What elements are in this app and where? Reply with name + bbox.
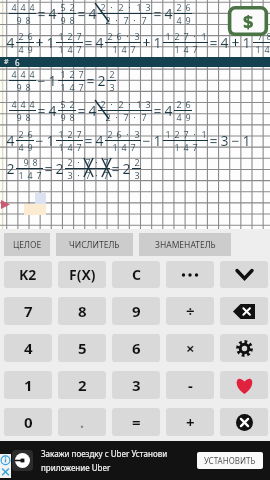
button[interactable]: ЧИСЛИТЕЛЬ — [56, 233, 133, 256]
button[interactable]: + — [166, 408, 214, 436]
button[interactable]: 7 — [4, 297, 52, 325]
staticText: 9 — [23, 156, 29, 168]
button[interactable]: ÷ — [166, 297, 214, 325]
button[interactable]: 4 — [4, 334, 52, 362]
staticText: 4 — [20, 1, 26, 13]
staticText: 2 — [67, 128, 73, 140]
staticText: 9 — [16, 14, 22, 26]
staticText: = — [77, 101, 86, 120]
staticText: ЗНАМЕНАТЕЛЬ — [155, 239, 216, 251]
button[interactable]: Remove ads — [228, 6, 268, 36]
staticText: 9 — [60, 111, 66, 123]
staticText: 3 — [220, 131, 229, 150]
staticText: 4 — [29, 1, 35, 13]
button[interactable]: ЦЕЛОЕ — [4, 233, 50, 256]
staticText: · — [95, 156, 98, 168]
staticText: 5 — [60, 1, 66, 13]
staticText: 8 — [25, 111, 31, 123]
staticText: 2 — [18, 30, 24, 42]
button[interactable]: 8 — [58, 297, 106, 325]
staticText: 4 — [48, 4, 57, 23]
staticText: 1 — [174, 43, 180, 55]
button[interactable]: C — [112, 261, 160, 288]
button[interactable]: 2 — [58, 371, 106, 399]
button[interactable]: × — [166, 334, 214, 362]
staticText: - — [188, 375, 193, 395]
staticText: 3 — [134, 169, 140, 181]
staticText: 4 — [183, 141, 189, 153]
staticText: 1 — [46, 131, 55, 150]
staticText: 1 — [58, 30, 64, 42]
button[interactable]: . — [58, 408, 106, 436]
staticText: УСТАНОВИТЬ — [204, 455, 256, 466]
other: Ad choices — [0, 454, 11, 478]
staticText: 2 — [107, 30, 113, 42]
staticText: 4 — [121, 141, 127, 153]
staticText: = — [209, 131, 218, 150]
button[interactable]: = — [112, 408, 160, 436]
staticText: 4 — [67, 141, 73, 153]
staticText: 4 — [183, 43, 189, 55]
staticText: 4 — [24, 338, 33, 358]
button[interactable]: 6 — [112, 334, 160, 362]
staticText: 7 — [24, 301, 33, 321]
staticText: − — [37, 71, 46, 90]
button[interactable]: 9 — [112, 297, 160, 325]
staticText: ЦЕЛОЕ — [13, 239, 42, 251]
staticText: = — [84, 131, 93, 150]
staticText: 3 — [134, 128, 140, 140]
staticText: 9 — [185, 14, 191, 26]
button[interactable]: K2 — [4, 261, 52, 288]
button[interactable]: Favourite — [220, 371, 268, 399]
staticText: 4 — [176, 111, 182, 123]
staticText: = — [77, 4, 86, 23]
staticText: 1 — [242, 131, 251, 150]
staticText: + — [231, 33, 240, 52]
staticText: × — [186, 338, 195, 358]
staticText: 4 — [29, 68, 35, 80]
button[interactable]: Ad choices — [0, 441, 270, 480]
staticText: = — [132, 412, 141, 432]
button[interactable]: More — [166, 261, 214, 288]
staticText: F(X) — [69, 265, 96, 284]
staticText: 9 — [27, 43, 33, 55]
staticText: 6 — [116, 128, 122, 140]
staticText: 4 — [20, 68, 26, 80]
staticText: 1 — [58, 43, 64, 55]
staticText: 4 — [20, 98, 26, 110]
button[interactable]: 0 — [4, 408, 52, 436]
staticText: 1 — [112, 141, 118, 153]
staticText: 1 — [165, 30, 171, 42]
button[interactable]: Clear all — [220, 408, 268, 436]
button[interactable]: 3 — [112, 371, 160, 399]
button[interactable]: 5 — [58, 334, 106, 362]
staticText: 3 — [145, 1, 151, 13]
button[interactable]: Collapse keyboard — [220, 261, 268, 288]
staticText: 8 — [266, 30, 270, 42]
staticText: · — [95, 169, 98, 181]
button[interactable]: - — [166, 371, 214, 399]
staticText: = — [111, 159, 120, 178]
button[interactable]: Settings — [220, 334, 268, 362]
staticText: 0 — [24, 412, 33, 432]
button[interactable]: ЗНАМЕНАТЕЛЬ — [139, 233, 231, 256]
button[interactable]: 1 — [4, 371, 52, 399]
staticText: 4 — [220, 33, 229, 52]
staticText: · — [77, 169, 80, 181]
staticText: = — [37, 101, 46, 120]
staticText: = — [44, 159, 53, 178]
staticText: 6 — [27, 30, 33, 42]
staticText: 7 — [192, 141, 198, 153]
staticText: $ — [243, 9, 254, 34]
staticText: 2 — [100, 98, 106, 110]
staticText: 2 — [118, 98, 124, 110]
button[interactable]: F(X) — [58, 261, 106, 288]
button[interactable]: УСТАНОВИТЬ — [197, 452, 263, 469]
staticText: 7 — [85, 169, 91, 181]
staticText: 6 — [116, 30, 122, 42]
button[interactable]: Backspace — [220, 297, 268, 325]
staticText: 7 — [76, 128, 82, 140]
staticText: 1 — [255, 43, 261, 55]
staticText: 7 — [36, 169, 42, 181]
staticText: 2 — [67, 30, 73, 42]
